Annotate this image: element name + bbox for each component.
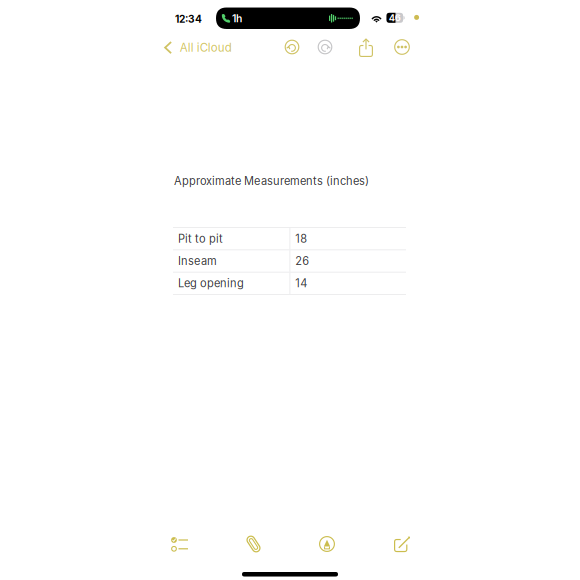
button[interactable]: Checklist [171, 537, 188, 552]
button[interactable]: New Note [394, 536, 410, 552]
staticText: 12:34 [175, 13, 202, 25]
staticText: 14 [295, 277, 307, 290]
staticText: 1h [232, 12, 242, 25]
button[interactable]: Share [358, 38, 374, 57]
staticText: 26 [295, 254, 309, 268]
staticText: 18 [295, 232, 307, 245]
staticText: Inseam [178, 254, 217, 268]
button[interactable]: Markup [319, 536, 335, 552]
staticText: 46 [389, 12, 401, 23]
staticText: All iCloud [180, 41, 232, 55]
button[interactable]: Undo [284, 39, 299, 54]
staticText: Pit to pit [178, 232, 223, 245]
button[interactable]: More [394, 39, 410, 55]
button[interactable]: Redo [317, 39, 332, 54]
staticText: Leg opening [178, 277, 244, 290]
button[interactable]: Attach [246, 535, 261, 553]
button[interactable]: All iCloud [163, 41, 253, 55]
staticText: Approximate Measurements (inches) [174, 174, 369, 188]
